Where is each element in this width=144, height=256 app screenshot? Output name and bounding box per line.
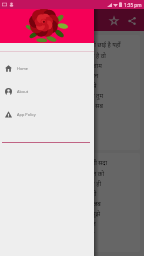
staticText: Home: [17, 66, 29, 71]
button[interactable]: Home: [0, 57, 94, 80]
staticText: प्यार का मौसम आया है आज मन में खुशी छाई …: [9, 41, 121, 120]
button[interactable]: Share: [125, 14, 138, 27]
staticText: मुहब्बत की राहों में चलते रहे हम सब यूँ …: [9, 159, 108, 238]
button[interactable]: App Policy: [0, 103, 94, 126]
button[interactable]: मुहब्बत की राहों में चलते रहे हम सब यूँ …: [4, 153, 140, 252]
button[interactable]: Favorite: [107, 14, 120, 27]
staticText: About: [17, 89, 29, 94]
button[interactable]: प्यार का मौसम आया है आज मन में खुशी छाई …: [4, 35, 140, 150]
button[interactable]: About: [0, 80, 94, 103]
staticText: 1:35 pm: [124, 2, 142, 8]
staticText: App Policy: [17, 112, 36, 117]
